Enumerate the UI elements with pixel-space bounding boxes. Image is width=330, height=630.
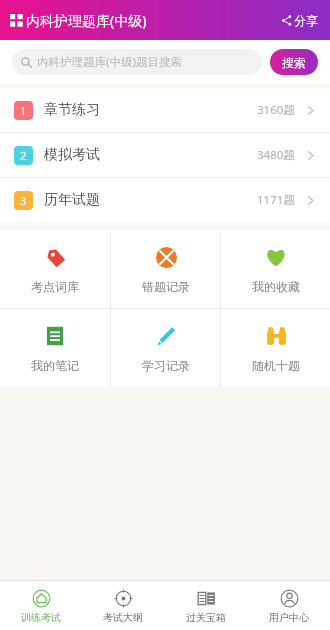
staticText: 1171题 bbox=[257, 192, 295, 208]
button[interactable]: 搜索 bbox=[270, 49, 318, 75]
staticText: 考点词库 bbox=[31, 279, 79, 294]
button[interactable]: 分享 bbox=[279, 9, 320, 32]
other: 考试大纲 bbox=[114, 589, 133, 608]
staticText: 我的收藏 bbox=[252, 279, 300, 294]
button[interactable]: 考试大纲 bbox=[82, 581, 164, 630]
other: 用户中心 bbox=[280, 589, 299, 608]
staticText: 内科护理题库(中级) bbox=[26, 11, 147, 30]
staticText: 我的笔记 bbox=[31, 358, 79, 373]
staticText: 内科护理题库(中级)题目搜索 bbox=[37, 54, 182, 70]
staticText: 错题记录 bbox=[142, 279, 190, 294]
staticText: 学习记录 bbox=[142, 358, 190, 373]
other: 训练考试 bbox=[32, 589, 51, 608]
staticText: 考试大纲 bbox=[103, 611, 143, 624]
staticText: 过关宝箱 bbox=[186, 611, 226, 624]
staticText: 历年试题 bbox=[44, 191, 100, 209]
staticText: 2 bbox=[20, 148, 27, 163]
button[interactable]: 错题记录 bbox=[111, 230, 220, 308]
button[interactable]: 用户中心 bbox=[247, 581, 330, 630]
button[interactable]: 随机十题 bbox=[221, 309, 330, 387]
button[interactable]: 内科护理题库(中级)题目搜索 bbox=[12, 49, 262, 75]
button[interactable]: 3 bbox=[0, 178, 330, 222]
staticText: 训练考试 bbox=[21, 611, 61, 624]
staticText: 用户中心 bbox=[269, 611, 309, 624]
button[interactable]: 2 bbox=[0, 133, 330, 177]
staticText: 章节练习 bbox=[44, 101, 100, 119]
button[interactable]: 我的收藏 bbox=[221, 230, 330, 308]
button[interactable]: 训练考试 bbox=[0, 581, 82, 630]
button[interactable]: 过关宝箱 bbox=[164, 581, 247, 630]
staticText: 模拟考试 bbox=[44, 146, 100, 164]
button[interactable]: 学习记录 bbox=[111, 309, 220, 387]
button[interactable]: 考点词库 bbox=[0, 230, 110, 308]
staticText: 随机十题 bbox=[252, 358, 300, 373]
staticText: 搜索 bbox=[282, 55, 306, 70]
staticText: 3480题 bbox=[257, 147, 295, 163]
button[interactable]: 我的笔记 bbox=[0, 309, 110, 387]
staticText: 3 bbox=[20, 193, 27, 208]
staticText: 1 bbox=[20, 103, 27, 118]
staticText: 3160题 bbox=[257, 102, 295, 118]
button[interactable]: 1 bbox=[0, 88, 330, 132]
staticText: 分享 bbox=[294, 13, 318, 28]
other: 过关宝箱 bbox=[197, 589, 216, 608]
